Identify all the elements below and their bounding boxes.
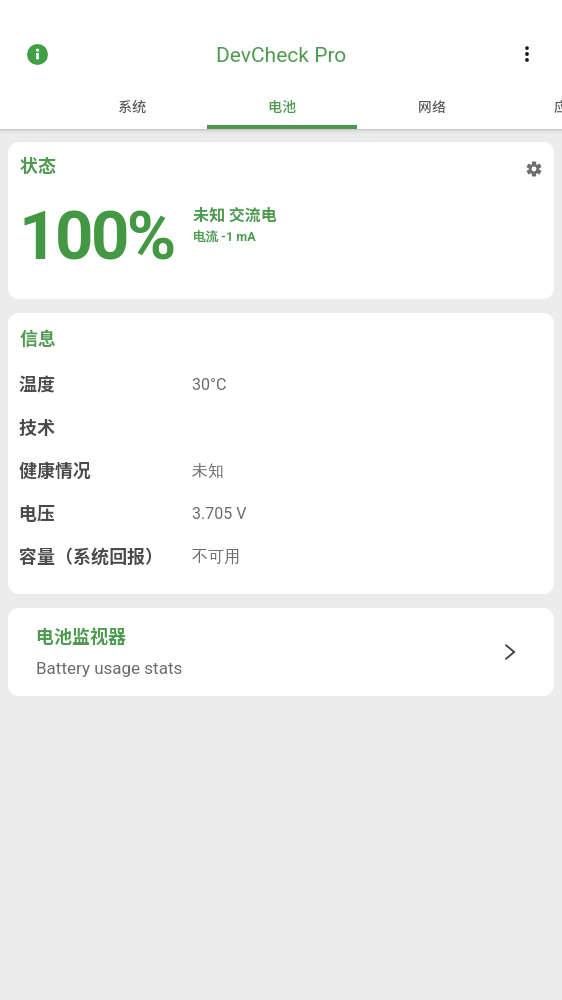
staticText: 电池 <box>268 96 296 116</box>
staticText: 网络 <box>418 96 446 116</box>
button[interactable]: 电池监视器 <box>8 608 554 696</box>
staticText: 信息 <box>20 324 56 350</box>
button[interactable]: About <box>16 33 58 75</box>
staticText: 未知 <box>192 461 224 481</box>
staticText: Battery usage stats <box>36 658 183 678</box>
staticText: 30°C <box>192 375 227 394</box>
staticText: 3.705 V <box>192 504 247 523</box>
staticText: 技术 <box>19 413 192 439</box>
staticText: 电池监视器 <box>36 622 126 648</box>
button[interactable]: 网络 <box>357 81 507 129</box>
staticText: 不可用 <box>192 547 240 567</box>
button[interactable]: More options <box>506 33 548 75</box>
button[interactable]: Settings <box>510 147 554 191</box>
staticText: 系统 <box>118 96 146 116</box>
staticText: 电压 <box>19 499 192 525</box>
staticText: DevCheck Pro <box>216 43 347 68</box>
button[interactable]: 系统 <box>57 81 207 129</box>
button[interactable]: 应用程序 <box>507 81 562 129</box>
staticText: 100% <box>19 197 174 276</box>
staticText: 温度 <box>19 370 192 396</box>
staticText: 未知 交流电 <box>193 202 277 225</box>
staticText: 电流 -1 mA <box>193 229 256 245</box>
button[interactable]: 电池 <box>207 81 357 129</box>
staticText: 应用程序 <box>554 96 562 116</box>
staticText: 容量（系统回报） <box>19 542 192 568</box>
staticText: 健康情况 <box>19 456 192 482</box>
staticText: 状态 <box>20 151 56 177</box>
